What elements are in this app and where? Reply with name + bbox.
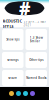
staticText: Other tips [29,58,43,62]
staticText: Named Books [26,76,46,80]
staticText: 29 APR - 2 MAY 2021 [23,20,46,27]
button[interactable]: Show Tips [2,29,23,50]
staticText: 1.3 Show Similar [30,36,43,43]
button[interactable]: Notes [9,91,14,96]
button[interactable]: Other tips [25,52,47,68]
staticText: secure [8,76,17,80]
button[interactable]: 1.3 Show Similar [25,29,47,50]
button[interactable]: secure [2,70,23,86]
staticText: Show Tips [6,38,19,41]
button[interactable]: settings [2,52,23,68]
button[interactable]: Browser [23,91,28,96]
staticText: settings [7,58,18,62]
button[interactable]: Music [30,91,35,96]
staticText: # [19,0,30,20]
button[interactable]: Named Books [25,70,47,86]
staticText: ACOUSTIC STYLE [2,18,22,29]
button[interactable]: Messages [16,91,21,96]
